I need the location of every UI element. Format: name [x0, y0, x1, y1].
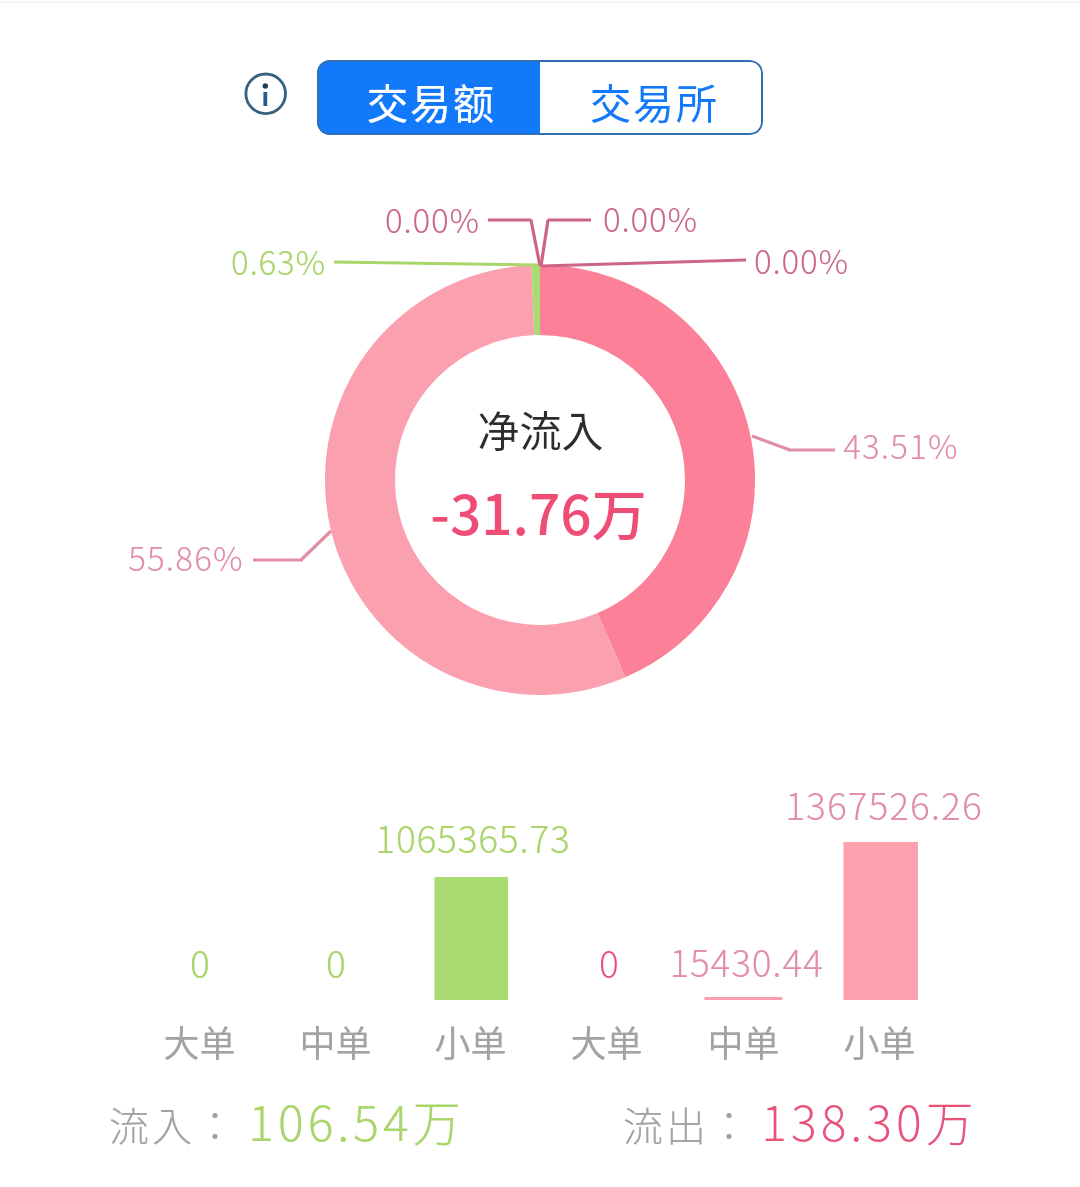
staticText: -31.76万 — [430, 471, 647, 551]
staticText: 0.00% — [385, 195, 480, 243]
button[interactable]: Information — [241, 70, 291, 120]
staticText: 0 — [599, 935, 619, 989]
staticText: 138.30万 — [761, 1085, 978, 1155]
staticText: 小单 — [434, 1015, 507, 1067]
staticText: 1367526.26 — [785, 777, 983, 831]
staticText: 流入： — [109, 1095, 238, 1153]
staticText: 0 — [326, 935, 346, 989]
staticText: 0 — [190, 935, 210, 989]
staticText: 交易额 — [367, 71, 496, 130]
staticText: 55.86% — [128, 533, 244, 581]
staticText: 15430.44 — [669, 934, 824, 988]
staticText: 大单 — [163, 1015, 236, 1067]
staticText: 中单 — [707, 1015, 780, 1067]
staticText: 0.63% — [231, 237, 326, 285]
staticText: 流出： — [623, 1095, 752, 1153]
staticText: 中单 — [299, 1015, 372, 1067]
staticText: 交易所 — [590, 71, 719, 130]
button[interactable]: 交易额 — [317, 60, 540, 135]
staticText: 净流入 — [477, 398, 604, 459]
staticText: 106.54万 — [248, 1085, 465, 1155]
staticText: 0.00% — [603, 194, 698, 242]
staticText: 0.00% — [754, 236, 849, 284]
button[interactable]: 交易所 — [540, 60, 763, 135]
staticText: 小单 — [843, 1015, 916, 1067]
staticText: 大单 — [570, 1015, 643, 1067]
staticText: 1065365.73 — [375, 810, 571, 864]
staticText: 43.51% — [843, 421, 959, 469]
